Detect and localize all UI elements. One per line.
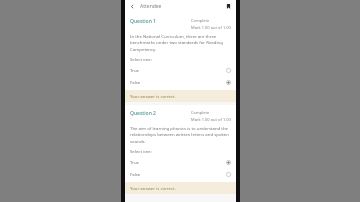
button[interactable]: True [125, 156, 236, 168]
staticText: In the National Curriculum, there are th… [130, 33, 231, 53]
staticText: False [130, 171, 226, 177]
staticText: Complete [191, 18, 210, 23]
staticText: Select one: [130, 148, 152, 154]
staticText: True [130, 159, 226, 165]
staticText: Question 2 [130, 110, 191, 117]
button[interactable]: False [125, 168, 236, 180]
staticText: The aim of learning phonics is to unders… [130, 125, 231, 145]
staticText: Mark 1.00 out of 1.00 [191, 117, 231, 122]
staticText: Attendee [140, 3, 162, 10]
button[interactable]: True [125, 64, 236, 76]
staticText: Select one: [130, 56, 152, 62]
staticText: Your answer is correct. [130, 185, 176, 191]
button[interactable]: False [125, 76, 236, 88]
staticText: Question 1 [130, 18, 191, 25]
staticText: Your answer is correct. [130, 93, 176, 99]
staticText: False [130, 79, 226, 85]
staticText: Mark 1.00 out of 1.00 [191, 25, 231, 30]
button[interactable]: Back [128, 2, 137, 11]
staticText: Complete [191, 110, 210, 115]
button[interactable]: Bookmark [224, 2, 233, 11]
staticText: True [130, 67, 226, 73]
